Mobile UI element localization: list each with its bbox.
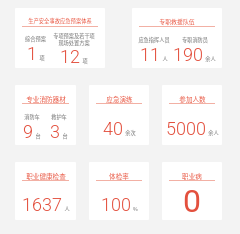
staticText: 生产安全事故应急预案体系 <box>28 17 92 25</box>
staticText: 1 <box>27 43 37 64</box>
staticText: 人 <box>162 55 168 63</box>
staticText: 专职消防员 <box>182 36 208 44</box>
staticText: 应急演练 <box>106 94 133 104</box>
staticText: 专项预案及若干项 现场处置方案 <box>53 32 95 46</box>
staticText: 综合预案 <box>25 35 46 43</box>
staticText: 职业病 <box>182 171 202 181</box>
staticText: 项 <box>39 54 45 62</box>
staticText: 体检率 <box>109 171 129 181</box>
staticText: 190 <box>173 44 203 65</box>
staticText: 12 <box>60 46 80 67</box>
button[interactable]: 应急演练 <box>89 85 149 145</box>
staticText: 9 <box>23 121 33 142</box>
staticText: 100 <box>101 194 131 215</box>
staticText: 台 <box>35 132 41 140</box>
staticText: 1637 <box>22 194 62 215</box>
staticText: 消防车 <box>24 113 40 121</box>
staticText: 余次 <box>125 129 136 137</box>
staticText: 专职救援队伍 <box>159 17 195 26</box>
staticText: 余人 <box>208 129 219 137</box>
staticText: 台 <box>62 132 68 140</box>
button[interactable]: 参加人数 <box>162 85 222 145</box>
staticText: 救护车 <box>51 113 67 121</box>
staticText: 项 <box>82 57 88 65</box>
staticText: 0 <box>183 182 201 220</box>
button[interactable]: 体检率 <box>89 162 149 220</box>
button[interactable]: 专职救援队伍 <box>132 8 222 68</box>
button[interactable]: 职业健康检查 <box>15 162 76 220</box>
staticText: 参加人数 <box>179 94 206 104</box>
staticText: 人 <box>64 205 70 213</box>
staticText: 应急指挥人员 <box>138 36 170 44</box>
button[interactable]: 专业消防器材 <box>15 85 76 145</box>
staticText: 专业消防器材 <box>26 94 66 104</box>
button[interactable]: 职业病 <box>162 162 222 220</box>
staticText: % <box>133 205 138 213</box>
staticText: 11 <box>140 44 160 65</box>
staticText: 余人 <box>205 55 216 63</box>
staticText: 3 <box>50 121 60 142</box>
button[interactable]: 生产安全事故应急预案体系 <box>15 8 105 68</box>
staticText: 职业健康检查 <box>26 171 66 181</box>
staticText: 40 <box>103 118 123 139</box>
staticText: 5000 <box>166 118 206 139</box>
